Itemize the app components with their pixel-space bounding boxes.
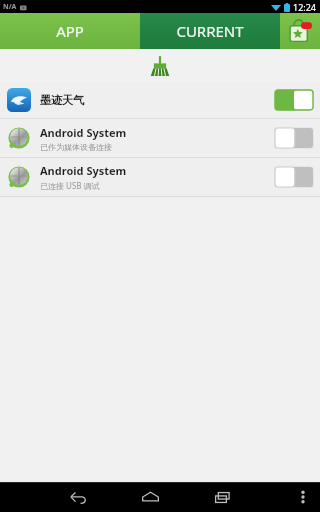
staticText: Android System xyxy=(40,163,127,178)
button[interactable]: APP xyxy=(0,13,140,49)
staticText: N/A xyxy=(3,2,17,12)
button[interactable]: More options xyxy=(290,482,316,512)
button[interactable]: Recent apps xyxy=(200,482,244,512)
button[interactable]: Home xyxy=(128,482,172,512)
staticText: 已连接 USB 调试 xyxy=(40,180,100,191)
staticText: CURRENT xyxy=(176,21,244,41)
button[interactable]: Off xyxy=(274,166,314,188)
staticText: APP xyxy=(56,21,84,41)
button[interactable]: 墨迹天气 xyxy=(0,82,320,118)
button[interactable]: Android System xyxy=(0,158,320,196)
button[interactable]: Off xyxy=(274,127,314,149)
staticText: 已作为媒体设备连接 xyxy=(40,142,112,152)
button[interactable]: Back xyxy=(56,482,100,512)
staticText: 墨迹天气 xyxy=(40,93,84,107)
button[interactable]: Android System xyxy=(0,119,320,157)
button[interactable]: CURRENT xyxy=(140,13,280,49)
staticText: Android System xyxy=(40,125,127,140)
staticText: 12:24 xyxy=(293,1,317,13)
button[interactable]: On xyxy=(274,89,314,111)
button[interactable]: Store, new items xyxy=(280,13,320,49)
